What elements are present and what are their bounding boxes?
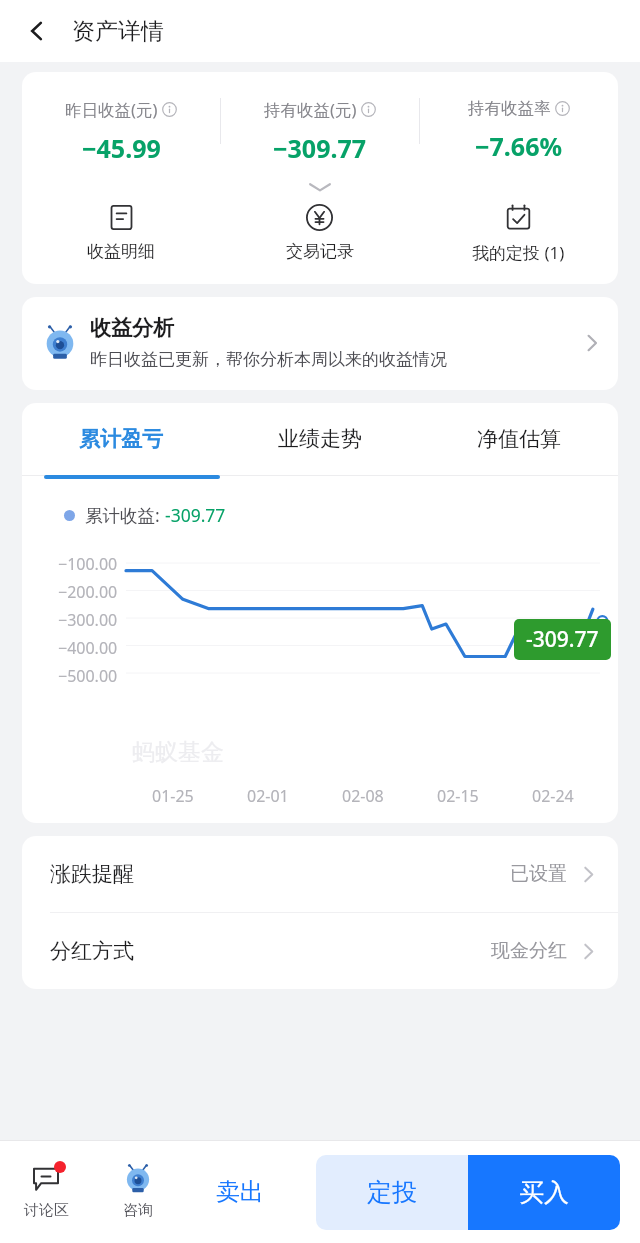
- staticText: 分红方式: [50, 938, 134, 964]
- staticText: 累计盈亏: [79, 426, 163, 452]
- staticText: 02-15: [437, 785, 479, 807]
- staticText: 昨日收益(元): [65, 98, 158, 121]
- staticText: 收益明细: [87, 241, 155, 262]
- staticText: 卖出: [216, 1177, 264, 1207]
- button[interactable]: 收益明细: [22, 204, 220, 262]
- staticText: −200.00: [58, 581, 118, 603]
- button[interactable]: 累计盈亏: [22, 403, 220, 475]
- button[interactable]: 交易记录: [220, 204, 419, 262]
- staticText: 买入: [519, 1177, 569, 1208]
- staticText: 01-25: [152, 785, 194, 807]
- staticText: 定投: [367, 1177, 417, 1208]
- button[interactable]: 昨日收益(元): [22, 98, 220, 165]
- staticText: 讨论区: [24, 1201, 69, 1220]
- staticText: 02-08: [342, 785, 384, 807]
- staticText: 持有收益率: [468, 98, 551, 119]
- button[interactable]: 定投: [316, 1155, 468, 1230]
- staticText: 02-24: [532, 785, 574, 807]
- button[interactable]: 我的定投 (1): [419, 204, 618, 264]
- staticText: 净值估算: [477, 426, 561, 452]
- button[interactable]: 卖出: [184, 1141, 296, 1243]
- staticText: 涨跌提醒: [50, 861, 134, 887]
- staticText: -309.77: [165, 503, 226, 527]
- staticText: -309.77: [526, 625, 599, 654]
- staticText: 持有收益(元): [264, 98, 357, 121]
- staticText: 蚂蚁基金: [132, 738, 224, 767]
- staticText: 交易记录: [286, 241, 354, 262]
- button[interactable]: 持有收益(元): [221, 98, 419, 165]
- button[interactable]: 返回: [14, 8, 60, 54]
- staticText: −309.77: [273, 131, 367, 165]
- button[interactable]: 收益分析: [22, 297, 618, 390]
- button[interactable]: 讨论区: [0, 1141, 92, 1243]
- staticText: 02-01: [247, 785, 289, 807]
- button[interactable]: 净值估算: [419, 403, 618, 475]
- button[interactable]: 咨询: [92, 1141, 184, 1243]
- staticText: 昨日收益已更新，帮你分析本周以来的收益情况: [90, 349, 447, 370]
- button[interactable]: 分红方式: [22, 913, 618, 989]
- staticText: −500.00: [58, 665, 118, 687]
- staticText: 咨询: [123, 1201, 153, 1220]
- staticText: 现金分红: [491, 939, 567, 963]
- staticText: 业绩走势: [278, 426, 362, 452]
- staticText: −100.00: [58, 553, 118, 575]
- staticText: −45.99: [82, 131, 161, 165]
- button[interactable]: 买入: [468, 1155, 620, 1230]
- staticText: 累计收益:: [85, 503, 165, 527]
- staticText: −7.66%: [475, 129, 563, 163]
- staticText: 已设置: [510, 862, 567, 886]
- staticText: 我的定投 (1): [472, 241, 565, 264]
- staticText: 收益分析: [90, 315, 174, 341]
- staticText: −400.00: [58, 637, 118, 659]
- button[interactable]: 展开: [22, 170, 618, 204]
- button[interactable]: 涨跌提醒: [22, 836, 618, 912]
- button[interactable]: 业绩走势: [220, 403, 419, 475]
- button[interactable]: 持有收益率: [420, 98, 618, 163]
- staticText: 资产详情: [72, 17, 164, 46]
- staticText: −300.00: [58, 609, 118, 631]
